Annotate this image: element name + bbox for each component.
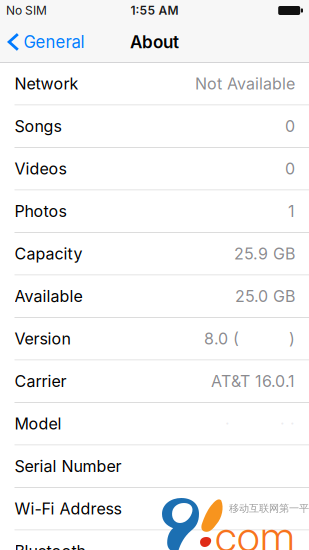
staticText: 0 [285,117,295,136]
staticText: Carrier [14,372,66,391]
staticText: Songs [14,117,61,136]
staticText: Wi-Fi Address [14,499,121,518]
staticText: Serial Number [14,457,121,476]
button[interactable]: Songs [0,105,309,148]
staticText: Capacity [14,244,82,263]
button[interactable]: Photos [0,190,309,233]
staticText: Videos [14,159,66,178]
staticText: General [23,32,84,52]
staticText: 1 [288,202,295,221]
staticText: Network [14,74,78,93]
staticText: Photos [14,202,66,221]
button[interactable]: General [0,21,92,63]
staticText: No SIM [6,3,47,18]
button[interactable]: Available [0,275,309,318]
button[interactable]: Model [0,403,309,445]
staticText: AT&T 16.0.1 [211,372,295,391]
staticText: 0 [285,159,295,178]
staticText: 25.0 GB [235,287,295,306]
staticText: Not Available [195,74,295,93]
staticText: Available [14,287,82,306]
button[interactable]: Network [0,63,309,105]
button[interactable]: Carrier [0,360,309,403]
staticText: 25.9 GB [234,244,295,263]
button[interactable]: Version [0,318,309,360]
staticText: com [215,511,295,550]
staticText: Bluetooth [14,542,85,550]
staticText: Version [14,329,70,348]
button[interactable]: Wi-Fi Address [0,488,309,530]
staticText: About [130,32,179,52]
button[interactable]: Bluetooth [0,530,309,550]
staticText: 1:55 AM [130,3,178,18]
button[interactable]: Videos [0,148,309,190]
button[interactable]: Serial Number [0,445,309,488]
button[interactable]: Capacity [0,233,309,275]
staticText: Model [14,414,61,433]
staticText: 8.0 ( ) [204,329,295,348]
staticText: 移动互联网第一平台 [229,502,309,515]
